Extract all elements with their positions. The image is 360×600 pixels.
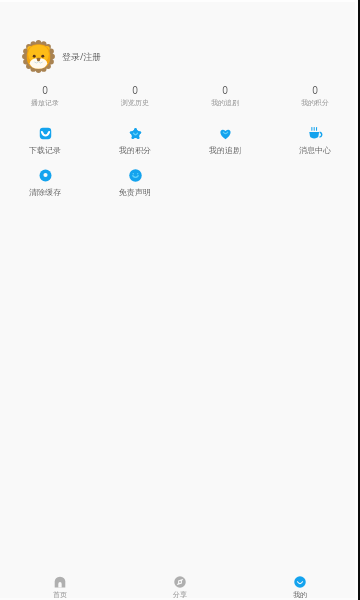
other: 头像 [22, 40, 55, 73]
button[interactable]: 0 [180, 83, 270, 107]
staticText: 我的 [293, 590, 307, 599]
staticText: 0 [42, 83, 48, 97]
staticText: 我的积分 [301, 98, 329, 107]
staticText: 消息中心 [299, 145, 331, 155]
staticText: 分享 [173, 590, 187, 599]
button[interactable]: 分享 [120, 572, 240, 600]
button[interactable]: 0 [90, 83, 180, 107]
button[interactable]: 首页 [0, 572, 120, 600]
staticText: 0 [132, 83, 138, 97]
button[interactable]: 我的 [240, 572, 360, 600]
button[interactable]: 0 [0, 83, 90, 107]
staticText: 首页 [53, 590, 67, 599]
staticText: 我的追剧 [209, 145, 241, 155]
button[interactable]: 清除缓存 [0, 165, 90, 201]
button[interactable]: 0 [270, 83, 360, 107]
staticText: 登录/注册 [62, 50, 102, 62]
staticText: 我的积分 [119, 145, 151, 155]
button[interactable]: 免责声明 [90, 165, 180, 201]
button[interactable]: 我的积分 [90, 123, 180, 159]
staticText: 浏览历史 [121, 98, 149, 107]
staticText: 下载记录 [29, 145, 61, 155]
staticText: 清除缓存 [29, 187, 61, 197]
staticText: 免责声明 [119, 187, 151, 197]
button[interactable]: 消息中心 [270, 123, 360, 159]
staticText: 0 [312, 83, 318, 97]
staticText: 我的追剧 [211, 98, 239, 107]
button[interactable]: 头像 [0, 30, 360, 82]
button[interactable]: 我的追剧 [180, 123, 270, 159]
staticText: 播放记录 [31, 98, 59, 107]
staticText: 0 [222, 83, 228, 97]
button[interactable]: 下载记录 [0, 123, 90, 159]
